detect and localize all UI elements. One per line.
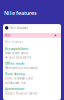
staticText: all your documents xyxy=(5,56,31,59)
staticText: Nile xyxy=(5,34,11,37)
staticText: Smart search across xyxy=(5,51,28,55)
staticText: Automations xyxy=(5,87,24,91)
staticText: Nile Assistant xyxy=(10,26,28,30)
staticText: collaborate live xyxy=(5,81,26,85)
staticText: Trigger flows on events xyxy=(5,92,37,95)
staticText: Nile features xyxy=(5,40,23,44)
staticText: Offline mode xyxy=(5,62,25,65)
staticText: Work without a network xyxy=(5,66,37,70)
staticText: Nile features xyxy=(4,9,37,17)
staticText: Invite teammates and xyxy=(5,77,33,80)
staticText: Team sharing xyxy=(5,72,25,76)
staticText: Key capabilities xyxy=(5,47,28,51)
